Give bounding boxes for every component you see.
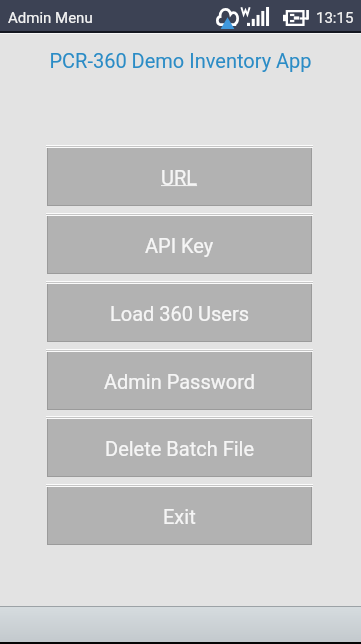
button[interactable]: Load 360 Users: [47, 284, 312, 342]
staticText: Admin Password: [104, 370, 256, 393]
other: Weather: [216, 8, 239, 26]
button[interactable]: URL: [47, 148, 312, 206]
button[interactable]: Exit: [47, 487, 312, 545]
button[interactable]: API Key: [47, 216, 312, 274]
staticText: Exit: [163, 505, 196, 528]
other: Battery charging: [283, 10, 310, 26]
staticText: Delete Batch File: [105, 437, 255, 460]
button[interactable]: Admin Password: [47, 352, 312, 410]
staticText: PCR-360 Demo Inventory App: [0, 49, 361, 72]
button[interactable]: Delete Batch File: [47, 419, 312, 477]
staticText: URL: [161, 166, 198, 189]
staticText: Admin Menu: [8, 9, 93, 27]
staticText: 13:15: [316, 9, 354, 27]
staticText: API Key: [145, 234, 214, 257]
staticText: Load 360 Users: [110, 302, 249, 325]
